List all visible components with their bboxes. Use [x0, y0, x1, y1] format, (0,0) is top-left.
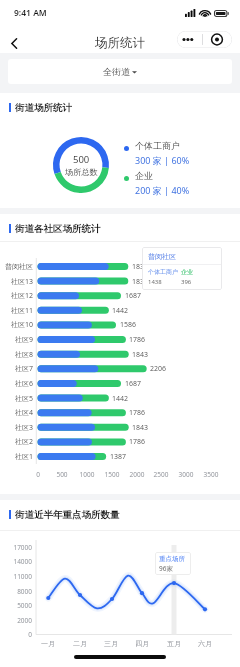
staticText: 1687 — [125, 291, 142, 301]
staticText: 1000 — [76, 470, 98, 479]
staticText: 社区4 — [0, 408, 33, 418]
staticText: 1438 — [148, 278, 162, 286]
staticText: 1500 — [101, 470, 123, 479]
staticText: 1442 — [112, 394, 129, 404]
staticText: 社区13 — [0, 277, 33, 287]
staticText: 社区6 — [0, 379, 33, 389]
staticText: 四月 — [130, 639, 154, 648]
staticText: 9:41 AM — [14, 7, 47, 19]
staticText: 社区3 — [0, 423, 33, 433]
staticText: 500 — [51, 470, 73, 479]
button[interactable]: 个体工商户 — [124, 140, 190, 166]
staticText: 五月 — [162, 639, 186, 648]
staticText: 1687 — [125, 379, 142, 389]
staticText: 个体工商户 — [148, 268, 178, 276]
button[interactable]: Back — [0, 29, 28, 57]
staticText: 2000 — [126, 470, 148, 479]
staticText: 社区8 — [0, 350, 33, 360]
button[interactable]: More options — [177, 31, 232, 48]
staticText: 社区1 — [0, 452, 33, 462]
staticText: 0 — [27, 470, 49, 479]
staticText: 场所统计 — [95, 35, 145, 51]
staticText: 8000 — [2, 587, 32, 596]
staticText: 二月 — [68, 639, 92, 648]
staticText: 1442 — [112, 306, 129, 316]
staticText: 1786 — [129, 408, 146, 418]
staticText: 普闵社区 — [148, 252, 176, 261]
staticText: 企业 — [181, 268, 193, 276]
staticText: 社区12 — [0, 291, 33, 301]
staticText: 企业 — [135, 170, 153, 181]
staticText: 全街道 — [103, 66, 130, 77]
staticText: 396 — [181, 278, 192, 286]
staticText: 一月 — [36, 639, 60, 648]
staticText: 普闵社区 — [0, 262, 33, 271]
staticText: 三月 — [99, 639, 123, 648]
staticText: 14000 — [2, 557, 32, 566]
button[interactable]: 企业 — [124, 170, 190, 196]
staticText: 3500 — [200, 470, 222, 479]
staticText: 500 — [73, 153, 90, 166]
staticText: 2206 — [150, 364, 167, 374]
staticText: 300 家 | 60% — [135, 154, 190, 166]
staticText: 17000 — [2, 543, 32, 552]
staticText: 0 — [2, 630, 32, 639]
staticText: 场所总数 — [65, 167, 98, 177]
staticText: 2000 — [2, 616, 32, 625]
staticText: 1586 — [120, 320, 137, 330]
staticText: 5000 — [2, 601, 32, 610]
staticText: 2500 — [150, 470, 172, 479]
staticText: 3000 — [175, 470, 197, 479]
staticText: 11000 — [2, 572, 32, 581]
staticText: 社区9 — [0, 335, 33, 345]
staticText: 街道近半年重点场所数量 — [15, 509, 120, 520]
staticText: 街道各社区场所统计 — [15, 223, 101, 234]
staticText: 街道场所统计 — [15, 102, 72, 113]
staticText: 个体工商户 — [135, 140, 180, 151]
staticText: 六月 — [193, 639, 217, 648]
staticText: 1834 — [132, 277, 149, 287]
staticText: 社区10 — [0, 320, 33, 330]
staticText: 96家 — [159, 564, 173, 573]
staticText: 1834 — [132, 262, 149, 272]
staticText: 重点场所 — [159, 555, 185, 563]
staticText: 1387 — [110, 452, 127, 462]
staticText: 1843 — [132, 423, 149, 433]
staticText: 1786 — [129, 437, 146, 447]
staticText: 社区7 — [0, 364, 33, 374]
staticText: 社区2 — [0, 437, 33, 447]
staticText: 1786 — [129, 335, 146, 345]
staticText: 1843 — [132, 350, 149, 360]
staticText: 200 家 | 40% — [135, 184, 190, 196]
button[interactable]: 全街道 — [8, 59, 232, 84]
staticText: 社区11 — [0, 306, 33, 316]
staticText: 社区5 — [0, 394, 33, 404]
